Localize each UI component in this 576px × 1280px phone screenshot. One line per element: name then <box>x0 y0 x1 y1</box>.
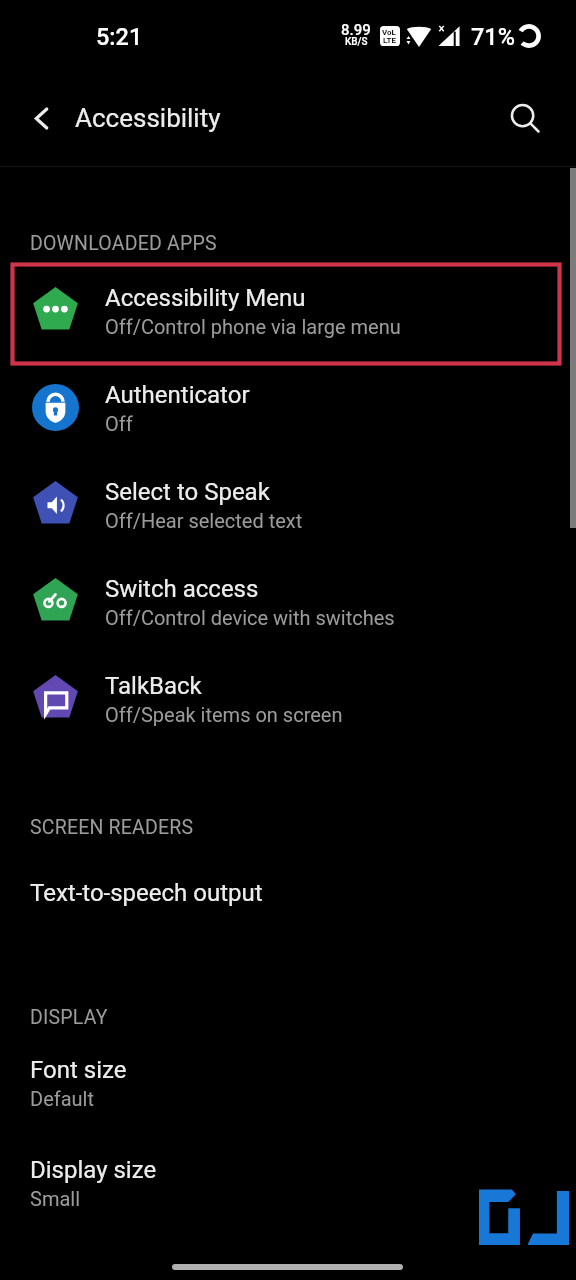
staticText: Text-to-speech output <box>30 879 263 907</box>
staticText: Off/Control device with switches <box>105 606 395 629</box>
staticText: Small <box>30 1187 81 1210</box>
staticText: 8.99 <box>341 21 371 39</box>
staticText: SCREEN READERS <box>30 816 194 839</box>
staticText: Switch access <box>105 575 259 603</box>
button[interactable]: Back <box>12 70 68 166</box>
staticText: DOWNLOADED APPS <box>30 232 217 255</box>
staticText: Off/Speak items on screen <box>105 703 343 726</box>
staticText: KB/S <box>345 36 368 48</box>
staticText: Off <box>105 412 133 435</box>
staticText: Font size <box>30 1056 127 1084</box>
button[interactable]: Display size <box>0 1156 576 1210</box>
staticText: DISPLAY <box>30 1006 108 1029</box>
button[interactable]: Switch access <box>0 553 576 650</box>
button[interactable]: Select to Speak <box>0 456 576 553</box>
staticText: VoL <box>382 28 396 37</box>
staticText: Authenticator <box>105 381 250 409</box>
button[interactable]: Search <box>492 70 558 166</box>
staticText: 5:21 <box>96 23 143 51</box>
staticText: Off/Hear selected text <box>105 509 303 532</box>
staticText: Select to Speak <box>105 478 270 506</box>
staticText: Accessibility Menu <box>105 284 306 312</box>
button[interactable]: Accessibility Menu <box>0 262 576 359</box>
staticText: TalkBack <box>105 672 202 700</box>
button[interactable]: TalkBack <box>0 650 576 747</box>
button[interactable]: Font size <box>0 1056 576 1110</box>
staticText: 71% <box>471 23 515 51</box>
staticText: LTE <box>383 36 396 45</box>
staticText: Display size <box>30 1156 157 1184</box>
button[interactable]: Authenticator <box>0 359 576 456</box>
staticText: Default <box>30 1087 94 1110</box>
button[interactable]: Text-to-speech output <box>0 879 576 907</box>
staticText: Off/Control phone via large menu <box>105 315 401 338</box>
staticText: Accessibility <box>75 103 221 133</box>
